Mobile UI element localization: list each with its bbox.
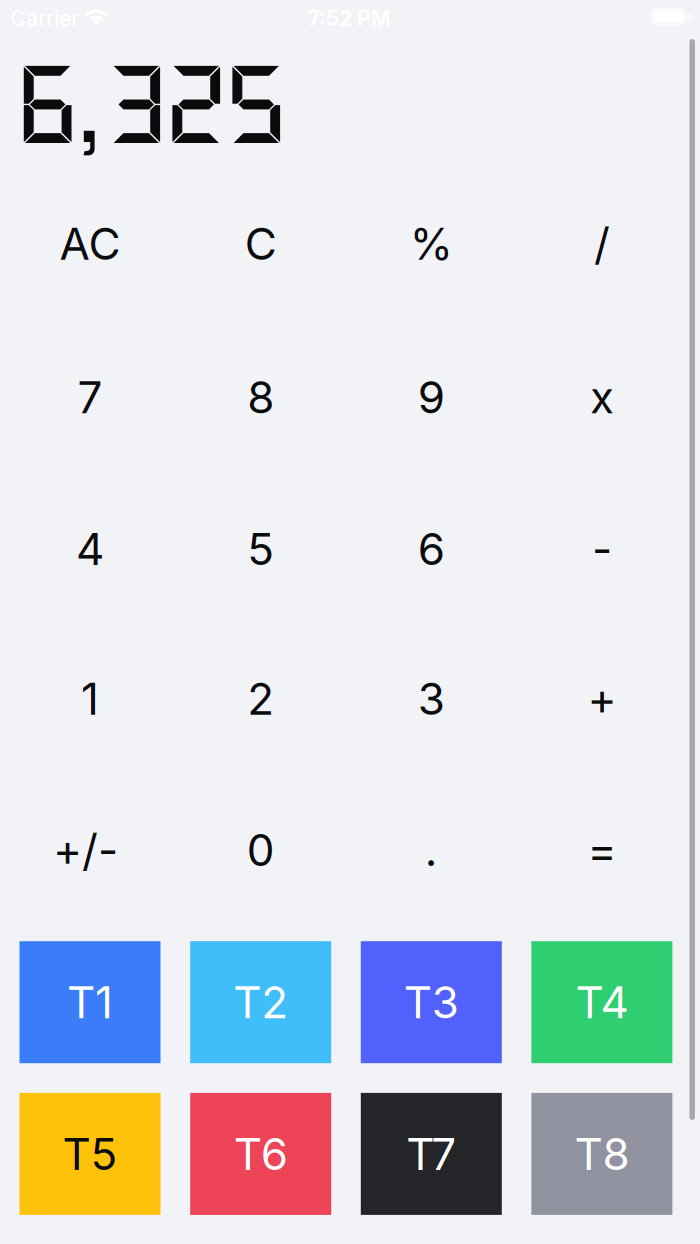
staticText: 3 (418, 673, 445, 725)
staticText: T3 (404, 976, 459, 1028)
button[interactable]: 9 (346, 321, 517, 473)
staticText: T6 (234, 1128, 288, 1180)
staticText: = (587, 824, 616, 876)
button[interactable]: . (346, 774, 517, 926)
button[interactable]: 5 (175, 473, 346, 625)
staticText: 2 (247, 673, 274, 725)
button[interactable]: 0 (175, 774, 346, 926)
button[interactable]: C (175, 168, 346, 320)
staticText: + (587, 673, 616, 725)
staticText: Carrier (10, 6, 79, 31)
staticText: % (410, 218, 453, 270)
button[interactable]: - (517, 473, 687, 625)
staticText: - (592, 523, 612, 575)
button[interactable]: T7 (361, 1093, 502, 1215)
button[interactable]: 1 (5, 623, 175, 774)
button[interactable]: / (517, 168, 687, 320)
staticText: 7:52 PM (308, 6, 391, 31)
staticText: 6 (418, 523, 445, 575)
button[interactable]: T3 (361, 941, 502, 1063)
button[interactable]: 6 (346, 473, 517, 625)
staticText: 5 (247, 523, 274, 575)
staticText: T4 (575, 976, 628, 1028)
staticText: T1 (67, 976, 113, 1028)
staticText: 7 (77, 371, 102, 423)
staticText: T2 (233, 976, 288, 1028)
staticText: C (245, 218, 277, 270)
staticText: T5 (62, 1128, 117, 1180)
button[interactable]: 4 (5, 473, 175, 625)
button[interactable]: AC (5, 168, 175, 320)
button[interactable]: +/- (5, 774, 175, 926)
button[interactable]: T6 (190, 1093, 331, 1215)
button[interactable]: T2 (190, 941, 331, 1063)
button[interactable]: 2 (175, 623, 346, 774)
staticText: x (590, 371, 614, 423)
button[interactable]: 3 (346, 623, 517, 774)
button[interactable]: T8 (531, 1093, 672, 1215)
button[interactable]: T4 (531, 941, 672, 1063)
staticText: AC (59, 218, 120, 270)
button[interactable]: T1 (19, 941, 160, 1063)
staticText: T8 (574, 1128, 629, 1180)
staticText: . (425, 824, 438, 876)
button[interactable]: 7 (5, 321, 175, 473)
button[interactable]: T5 (19, 1093, 160, 1215)
staticText: 1 (81, 673, 99, 725)
staticText: 0 (247, 824, 275, 876)
staticText: +/- (53, 824, 118, 876)
button[interactable]: x (517, 321, 687, 473)
staticText: 8 (247, 371, 274, 423)
staticText: T7 (406, 1128, 456, 1180)
staticText: 4 (76, 523, 104, 575)
staticText: / (594, 218, 610, 270)
button[interactable]: % (346, 168, 517, 320)
button[interactable]: = (517, 774, 687, 926)
button[interactable]: 8 (175, 321, 346, 473)
staticText: 9 (418, 371, 445, 423)
button[interactable]: + (517, 623, 687, 774)
